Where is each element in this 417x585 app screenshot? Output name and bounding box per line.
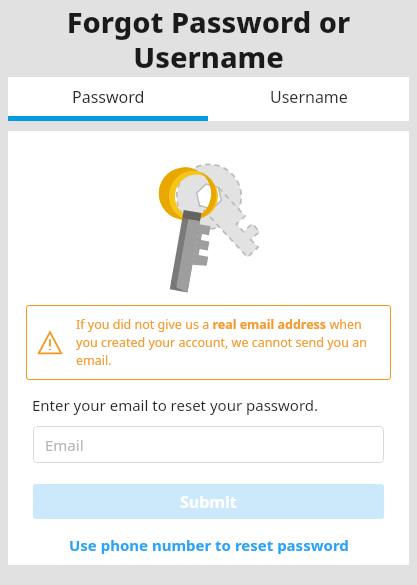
button[interactable]: Username <box>208 77 409 116</box>
staticText: Submit <box>180 491 237 513</box>
staticText: If you did not give us a real email addr… <box>76 316 379 369</box>
button[interactable]: Password <box>8 77 208 116</box>
button[interactable]: Submit <box>33 484 384 519</box>
staticText: Forgot Password or Username <box>18 2 399 75</box>
staticText: Password <box>72 86 145 108</box>
button[interactable]: Use phone number to reset password <box>8 532 409 558</box>
button[interactable]: Email <box>33 426 384 463</box>
staticText: Username <box>270 86 348 108</box>
staticText: Email <box>45 435 84 455</box>
staticText: Use phone number to reset password <box>69 535 349 555</box>
staticText: Enter your email to reset your password. <box>32 395 319 415</box>
